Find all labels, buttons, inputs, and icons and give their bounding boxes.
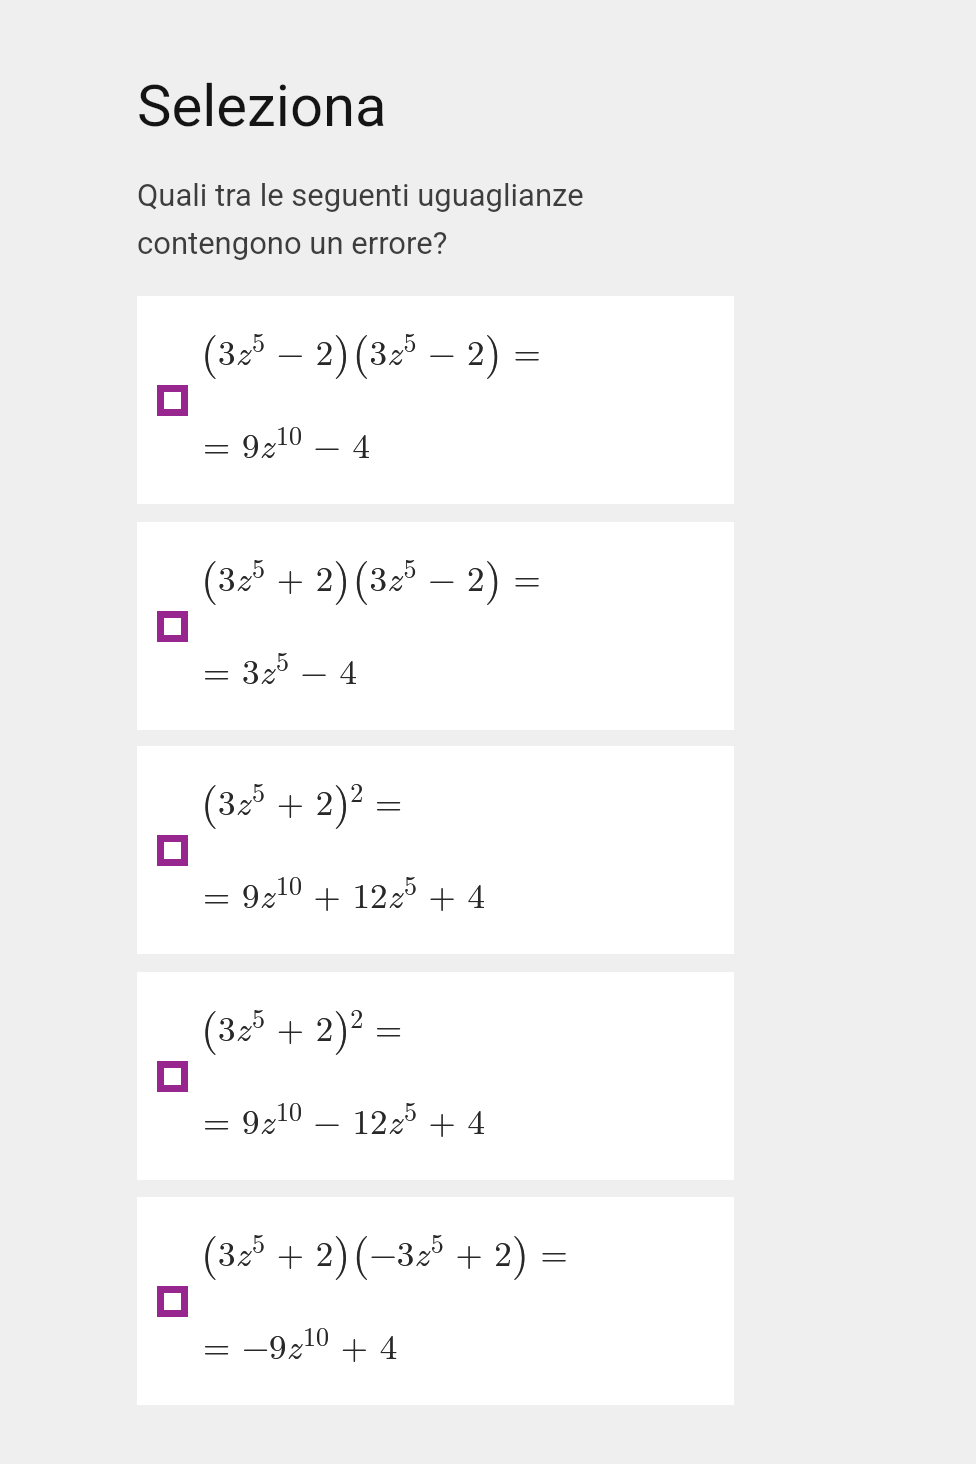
staticText: (3z 5 + 2)2 =: [201, 768, 414, 830]
staticText: = −9z 10 + 4: [203, 1317, 398, 1369]
button[interactable]: Opzione 5: [137, 1197, 734, 1405]
staticText: (3z 5 + 2) (−3z 5 + 2) =: [201, 1219, 580, 1281]
other: Seleziona opzione 2: [157, 611, 188, 642]
staticText: (3z 5 + 2)2 =: [201, 768, 414, 830]
staticText: (3z 5 + 2)2 =: [201, 994, 414, 1056]
staticText: = 9z 10 + 12z 5 + 4: [203, 866, 485, 918]
staticText: = 9z 10 − 12z 5 + 4: [203, 1092, 485, 1144]
staticText: (3z 5 + 2) (−3z 5 + 2) =: [201, 1219, 580, 1281]
staticText: (3z 5 − 2) (3z 5 − 2) =: [201, 318, 553, 380]
other: Seleziona opzione 1: [157, 385, 188, 416]
staticText: = 3z 5 − 4: [203, 642, 357, 694]
staticText: (3z 5 + 2)2 =: [201, 994, 414, 1056]
other: Seleziona opzione 3: [157, 835, 188, 866]
staticText: = 9z 10 + 12z 5 + 4: [203, 866, 485, 918]
staticText: = −9z 10 + 4: [203, 1317, 398, 1369]
staticText: (3z 5 − 2) (3z 5 − 2) =: [201, 318, 553, 380]
staticText: = 3z 5 − 4: [203, 642, 357, 694]
button[interactable]: Opzione 3: [137, 746, 734, 954]
button[interactable]: Opzione 1: [137, 296, 734, 504]
staticText: = 9z 10 − 4: [203, 416, 370, 468]
other: Seleziona opzione 5: [157, 1286, 188, 1317]
staticText: Quali tra le seguenti uguaglianze conten…: [137, 177, 584, 262]
staticText: = 9z 10 − 12z 5 + 4: [203, 1092, 485, 1144]
staticText: = 9z 10 − 4: [203, 416, 370, 468]
other: Seleziona opzione 4: [157, 1061, 188, 1092]
staticText: Seleziona: [137, 72, 387, 140]
staticText: (3z 5 + 2) (3z 5 − 2) =: [201, 544, 553, 606]
button[interactable]: Opzione 2: [137, 522, 734, 730]
staticText: (3z 5 + 2) (3z 5 − 2) =: [201, 544, 553, 606]
button[interactable]: Opzione 4: [137, 972, 734, 1180]
